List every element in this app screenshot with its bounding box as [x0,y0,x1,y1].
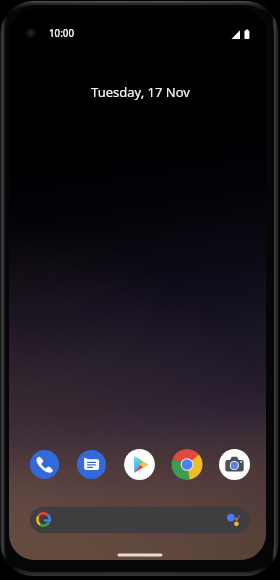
button[interactable]: Play Store [125,450,154,479]
button[interactable]: Messages [77,450,106,479]
staticText: Tuesday, 17 Nov [91,83,190,101]
button[interactable]: Search [30,506,250,534]
staticText: 10:00 [49,27,75,40]
button[interactable]: Phone [30,450,59,479]
button[interactable]: Camera [220,450,249,479]
button[interactable]: Tuesday, 17 Nov [40,83,240,101]
button[interactable]: Chrome [172,450,201,479]
